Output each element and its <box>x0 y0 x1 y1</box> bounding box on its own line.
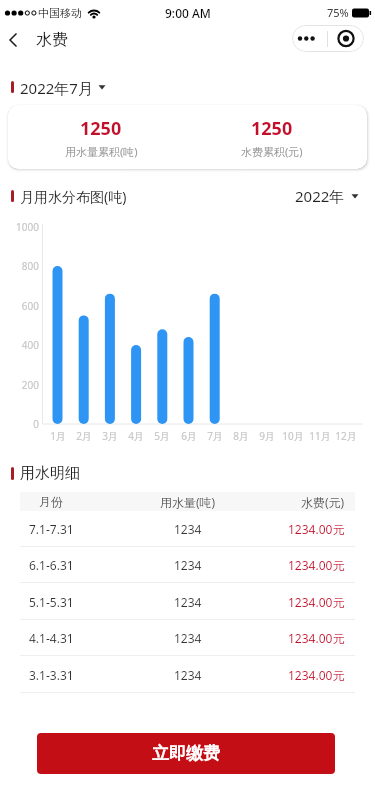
staticText: 1234.00元 <box>288 557 345 573</box>
staticText: 200 <box>5 378 39 392</box>
staticText: 1234.00元 <box>288 594 345 610</box>
button[interactable]: 2022年7月 <box>11 78 106 96</box>
staticText: 75% <box>327 5 349 20</box>
staticText: 400 <box>5 338 39 352</box>
button[interactable]: 2022年 <box>295 186 359 206</box>
staticText: 7.1-7.31 <box>29 521 74 537</box>
staticText: 1250 <box>251 116 293 141</box>
staticText: 水费累积(元) <box>241 144 303 159</box>
staticText: 8月 <box>226 429 256 443</box>
button[interactable] <box>292 25 327 52</box>
staticText: 11月 <box>305 429 335 443</box>
staticText: 立即缴费 <box>152 743 220 764</box>
staticText: 7月 <box>200 429 230 443</box>
button[interactable]: 7.1-7.31 <box>20 511 355 547</box>
staticText: 2022年 <box>295 186 345 206</box>
staticText: 中国移动 <box>38 6 82 20</box>
button[interactable] <box>328 25 364 52</box>
staticText: 月份 <box>39 494 63 509</box>
button[interactable]: 4.1-4.31 <box>20 620 355 656</box>
staticText: 1234 <box>174 557 202 573</box>
staticText: 1234.00元 <box>288 630 345 646</box>
staticText: 5.1-5.31 <box>29 594 74 610</box>
staticText: 用水量(吨) <box>160 494 216 510</box>
staticText: 1月 <box>43 429 73 443</box>
staticText: 6月 <box>174 429 204 443</box>
staticText: 800 <box>5 259 39 273</box>
staticText: 3月 <box>95 429 125 443</box>
staticText: 1234.00元 <box>288 521 345 537</box>
staticText: 1000 <box>5 220 39 234</box>
staticText: 12月 <box>331 429 361 443</box>
staticText: 用水量累积(吨) <box>65 144 138 159</box>
button[interactable]: 3.1-3.31 <box>20 657 355 693</box>
staticText: 水费(元) <box>301 494 345 510</box>
staticText: 1234 <box>174 521 202 537</box>
staticText: 用水明细 <box>20 464 80 482</box>
staticText: 1250 <box>80 116 122 141</box>
staticText: 1234 <box>174 667 202 683</box>
staticText: 9月 <box>252 429 282 443</box>
staticText: 月用水分布图(吨) <box>20 187 127 206</box>
staticText: 1234 <box>174 630 202 646</box>
staticText: 2022年7月 <box>20 78 93 96</box>
staticText: 1234.00元 <box>288 667 345 683</box>
staticText: 6.1-6.31 <box>29 557 74 573</box>
staticText: 9:00 AM <box>165 5 211 21</box>
staticText: 3.1-3.31 <box>29 667 74 683</box>
staticText: 4月 <box>121 429 151 443</box>
staticText: 1234 <box>174 594 202 610</box>
staticText: 600 <box>5 299 39 313</box>
staticText: 4.1-4.31 <box>29 630 74 646</box>
staticText: 2月 <box>69 429 99 443</box>
button[interactable]: 立即缴费 <box>37 733 335 774</box>
button[interactable]: 6.1-6.31 <box>20 547 355 583</box>
button[interactable] <box>0 25 30 55</box>
button[interactable]: 5.1-5.31 <box>20 584 355 620</box>
staticText: 5月 <box>147 429 177 443</box>
staticText: 10月 <box>278 429 308 443</box>
staticText: 水费 <box>36 30 68 50</box>
staticText: 0 <box>5 417 39 431</box>
